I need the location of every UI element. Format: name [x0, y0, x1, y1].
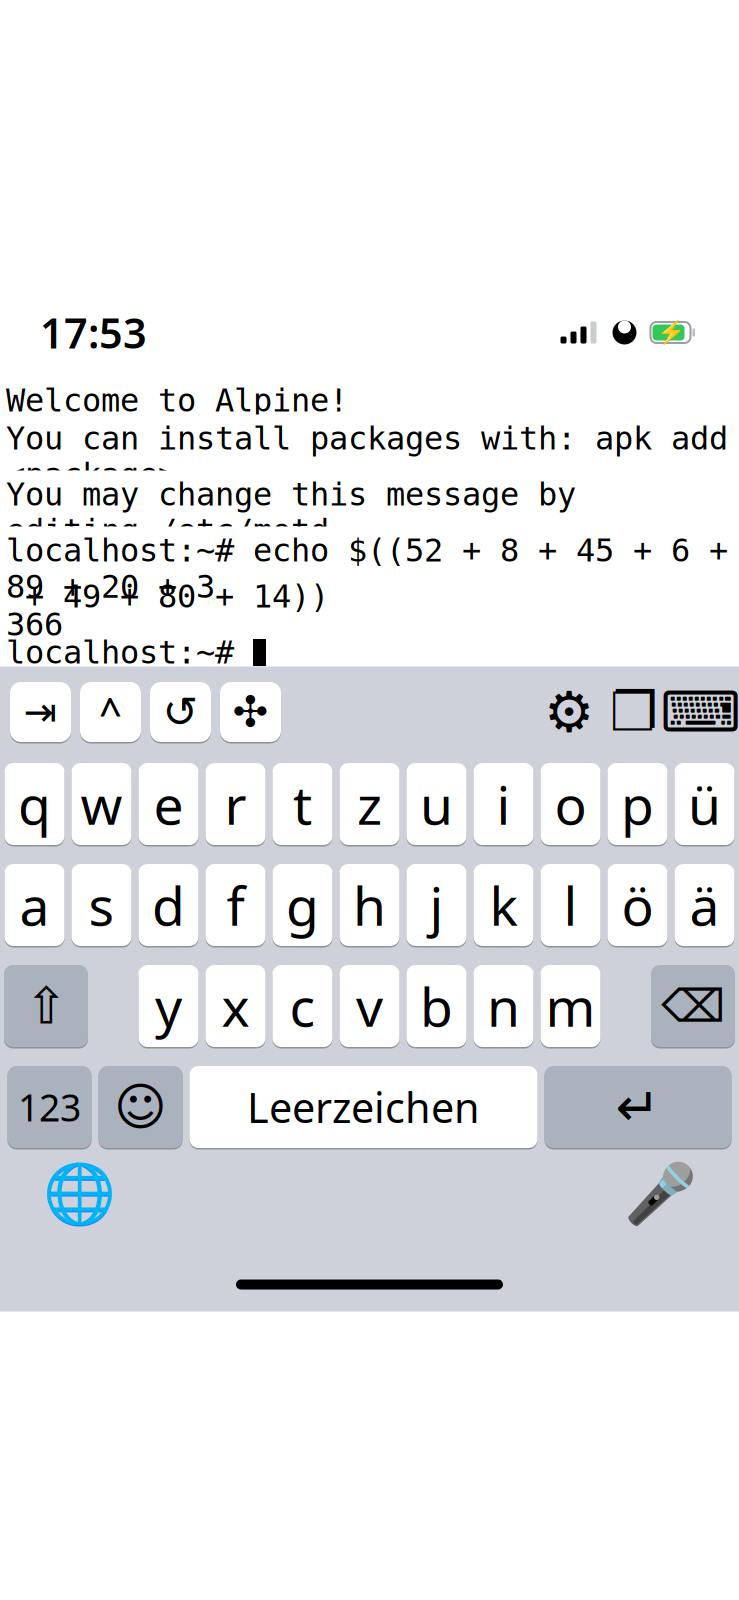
staticText: ⇧ [25, 977, 67, 1035]
staticText: ❐ [610, 682, 658, 742]
button[interactable]: Control [80, 680, 141, 743]
button[interactable]: t [272, 761, 332, 846]
button[interactable]: f [205, 862, 265, 947]
staticText: r [224, 769, 246, 839]
staticText: 17:53 [40, 305, 147, 360]
staticText: You can install packages with: apk add <… [6, 420, 728, 493]
staticText: m [545, 971, 595, 1041]
staticText: p [621, 769, 654, 839]
button[interactable]: e [138, 761, 198, 846]
staticText: l [563, 870, 577, 940]
staticText: ⚡ [656, 320, 684, 345]
staticText: n [487, 971, 520, 1041]
button[interactable]: Arrow keys [220, 680, 281, 743]
button[interactable]: ä [674, 862, 734, 947]
staticText: ↺ [162, 688, 198, 736]
staticText: ä [689, 870, 719, 940]
button[interactable]: Tab [10, 680, 71, 743]
staticText: ☺ [114, 1078, 167, 1136]
staticText: u [420, 769, 453, 839]
staticText: w [80, 769, 122, 839]
button[interactable]: b [406, 963, 466, 1048]
button[interactable]: Shift [4, 963, 88, 1048]
button[interactable]: v [339, 963, 399, 1048]
button[interactable]: Return [544, 1064, 731, 1149]
button[interactable]: Next keyboard [44, 1158, 114, 1228]
staticText: x [221, 971, 249, 1041]
button[interactable]: o [540, 761, 600, 846]
staticText: + 49 + 80 + 14)) [6, 578, 329, 615]
staticText: localhost:~# echo $((52 + 8 + 45 + 6 + 8… [6, 532, 728, 605]
staticText: o [554, 769, 586, 839]
staticText: z [357, 769, 382, 839]
staticText: f [226, 870, 244, 940]
staticText: e [153, 769, 183, 839]
staticText: 🌐 [42, 1160, 115, 1227]
staticText: ⇥ [23, 689, 57, 735]
staticText: g [286, 870, 319, 940]
staticText: y [155, 971, 182, 1041]
button[interactable]: Settings [541, 682, 597, 742]
button[interactable]: r [205, 761, 265, 846]
button[interactable]: q [4, 761, 64, 846]
staticText: j [429, 870, 443, 940]
staticText: ⚙ [544, 680, 594, 744]
staticText: h [353, 870, 386, 940]
staticText: localhost:~# [6, 634, 253, 671]
button[interactable]: Hide keyboard [671, 682, 731, 742]
button[interactable]: k [473, 862, 533, 947]
button[interactable]: w [71, 761, 131, 846]
button[interactable]: n [473, 963, 533, 1048]
staticText: Leerzeichen [247, 1080, 480, 1134]
staticText: 🎤 [623, 1160, 696, 1227]
button[interactable]: g [272, 862, 332, 947]
staticText: b [420, 971, 453, 1041]
button[interactable]: p [607, 761, 667, 846]
staticText: ✣ [232, 688, 268, 736]
staticText: q [18, 769, 51, 839]
staticText: ⌨ [660, 680, 739, 744]
staticText: ö [621, 870, 653, 940]
staticText: k [489, 870, 517, 940]
button[interactable]: c [272, 963, 332, 1048]
staticText: 366 [6, 606, 63, 643]
staticText: a [19, 870, 49, 940]
button[interactable]: l [540, 862, 600, 947]
staticText: ^ [99, 685, 122, 738]
staticText: v [356, 971, 383, 1041]
button[interactable]: z [339, 761, 399, 846]
button[interactable]: Emoji [98, 1064, 182, 1149]
staticText: 123 [18, 1082, 81, 1132]
staticText: d [152, 870, 185, 940]
button[interactable]: 123 [7, 1064, 91, 1149]
button[interactable]: y [138, 963, 198, 1048]
button[interactable]: Escape [150, 680, 211, 743]
staticText: ü [688, 769, 721, 839]
button[interactable]: Paste [606, 682, 662, 742]
button[interactable]: h [339, 862, 399, 947]
button[interactable]: Dictation [625, 1158, 695, 1228]
staticText: s [88, 870, 114, 940]
button[interactable]: ü [674, 761, 734, 846]
button[interactable]: ö [607, 862, 667, 947]
staticText: t [293, 769, 312, 839]
button[interactable]: a [4, 862, 64, 947]
button[interactable]: i [473, 761, 533, 846]
button[interactable]: m [540, 963, 600, 1048]
button[interactable]: u [406, 761, 466, 846]
staticText: ↵ [615, 1077, 660, 1137]
staticText: Welcome to Alpine! [6, 382, 348, 419]
button[interactable]: Leerzeichen [189, 1064, 537, 1149]
button[interactable]: x [205, 963, 265, 1048]
button[interactable]: s [71, 862, 131, 947]
button[interactable]: j [406, 862, 466, 947]
button[interactable]: Delete [651, 963, 735, 1048]
staticText: You may change this message by editing /… [6, 476, 576, 549]
staticText: i [496, 769, 510, 839]
staticText: c [289, 971, 315, 1041]
button[interactable]: d [138, 862, 198, 947]
staticText: ⌫ [661, 980, 725, 1032]
